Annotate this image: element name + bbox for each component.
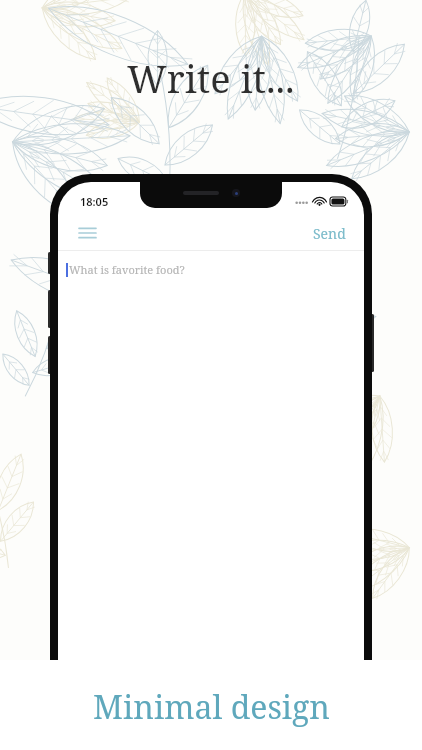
staticText: Send bbox=[313, 224, 346, 243]
staticText: 18:05 bbox=[80, 194, 109, 209]
button[interactable]: Send bbox=[307, 220, 352, 247]
button[interactable]: Menu bbox=[72, 218, 102, 248]
staticText: Write it... bbox=[127, 52, 295, 104]
staticText: What is favorite food? bbox=[69, 262, 185, 277]
staticText: Minimal design bbox=[93, 685, 330, 729]
button[interactable]: What is favorite food? bbox=[58, 251, 364, 750]
